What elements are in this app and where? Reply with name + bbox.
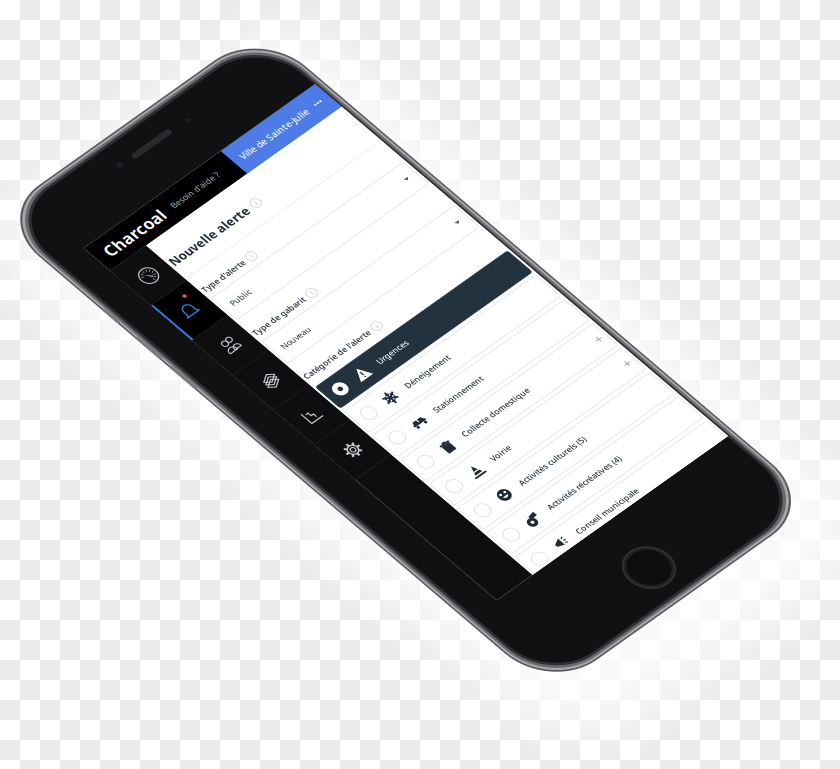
button[interactable]: Collecte domestique [61, 452, 372, 492]
staticText: Nouveau [72, 241, 117, 255]
button[interactable]: Charcoal [0, 0, 107, 43]
staticText: Activités récréatives (4) [141, 603, 257, 617]
staticText: + [356, 460, 366, 483]
staticText: Charcoal [14, 7, 107, 36]
staticText: Type de gabarit [61, 206, 143, 221]
staticText: Catégorie de l'alerte [61, 289, 166, 303]
staticText: Besoin d'aide ? [121, 14, 197, 29]
button[interactable]: Besoin d'aide ? [107, 0, 197, 43]
staticText: i [154, 207, 156, 220]
staticText: Collecte domestique [141, 465, 247, 479]
staticText: Public [72, 159, 103, 173]
button[interactable]: Alertes [0, 109, 58, 175]
button[interactable]: Urgences [61, 314, 372, 354]
button[interactable]: Contenus [0, 241, 58, 307]
staticText: Activités culturels (5) [141, 557, 246, 571]
button[interactable]: Voirie [61, 498, 372, 538]
staticText: Voirie [141, 511, 171, 525]
staticText: Urgences [141, 327, 189, 341]
button[interactable]: Citoyens [0, 175, 58, 241]
staticText: i [198, 73, 200, 86]
staticText: ••• [352, 15, 364, 28]
button[interactable]: Public [61, 145, 372, 186]
button[interactable]: Ville de Sainte-Julie [222, 0, 375, 43]
button[interactable]: Déneigement [61, 360, 372, 400]
staticText: Ville de Sainte-Julie [233, 13, 341, 29]
staticText: Conseil municipale [141, 649, 239, 663]
staticText: Type d'alerte [61, 124, 128, 138]
button[interactable]: Statistiques [0, 307, 58, 373]
button[interactable]: Activités culturels (5) [61, 544, 372, 584]
staticText: Nouvelle alerte [61, 69, 186, 90]
button[interactable]: Activités récréatives (4) [61, 590, 372, 630]
button[interactable]: Tableau de bord [0, 43, 58, 109]
button[interactable]: Nouveau [61, 228, 372, 269]
button[interactable]: Stationnement [61, 406, 372, 446]
staticText: Déneigement [141, 373, 211, 387]
button[interactable]: Réglages [0, 373, 58, 439]
button[interactable]: Conseil municipale [61, 636, 372, 676]
staticText: + [356, 506, 366, 529]
staticText: Stationnement [141, 419, 218, 433]
